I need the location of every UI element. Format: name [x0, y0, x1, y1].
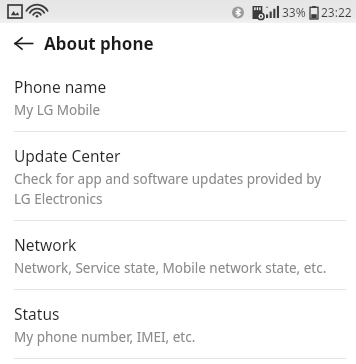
staticText: Network, Service state, Mobile network s…: [14, 259, 327, 277]
staticText: About phone: [44, 32, 154, 55]
staticText: Status: [14, 303, 60, 324]
staticText: My LG Mobile: [14, 101, 101, 119]
staticText: Phone name: [14, 76, 107, 97]
staticText: Update Center: [14, 145, 121, 166]
staticText: 33%: [282, 4, 306, 20]
staticText: Check for app and software updates provi…: [14, 170, 322, 188]
staticText: Network: [14, 234, 77, 255]
button[interactable]: Update Center: [0, 132, 356, 220]
staticText: 23:22: [321, 4, 352, 20]
button[interactable]: Back: [6, 26, 40, 60]
button[interactable]: Phone name: [0, 63, 356, 131]
staticText: LG Electronics: [14, 190, 103, 208]
button[interactable]: Status: [0, 290, 356, 358]
staticText: My phone number, IMEI, etc.: [14, 328, 196, 346]
button[interactable]: Network: [0, 221, 356, 289]
